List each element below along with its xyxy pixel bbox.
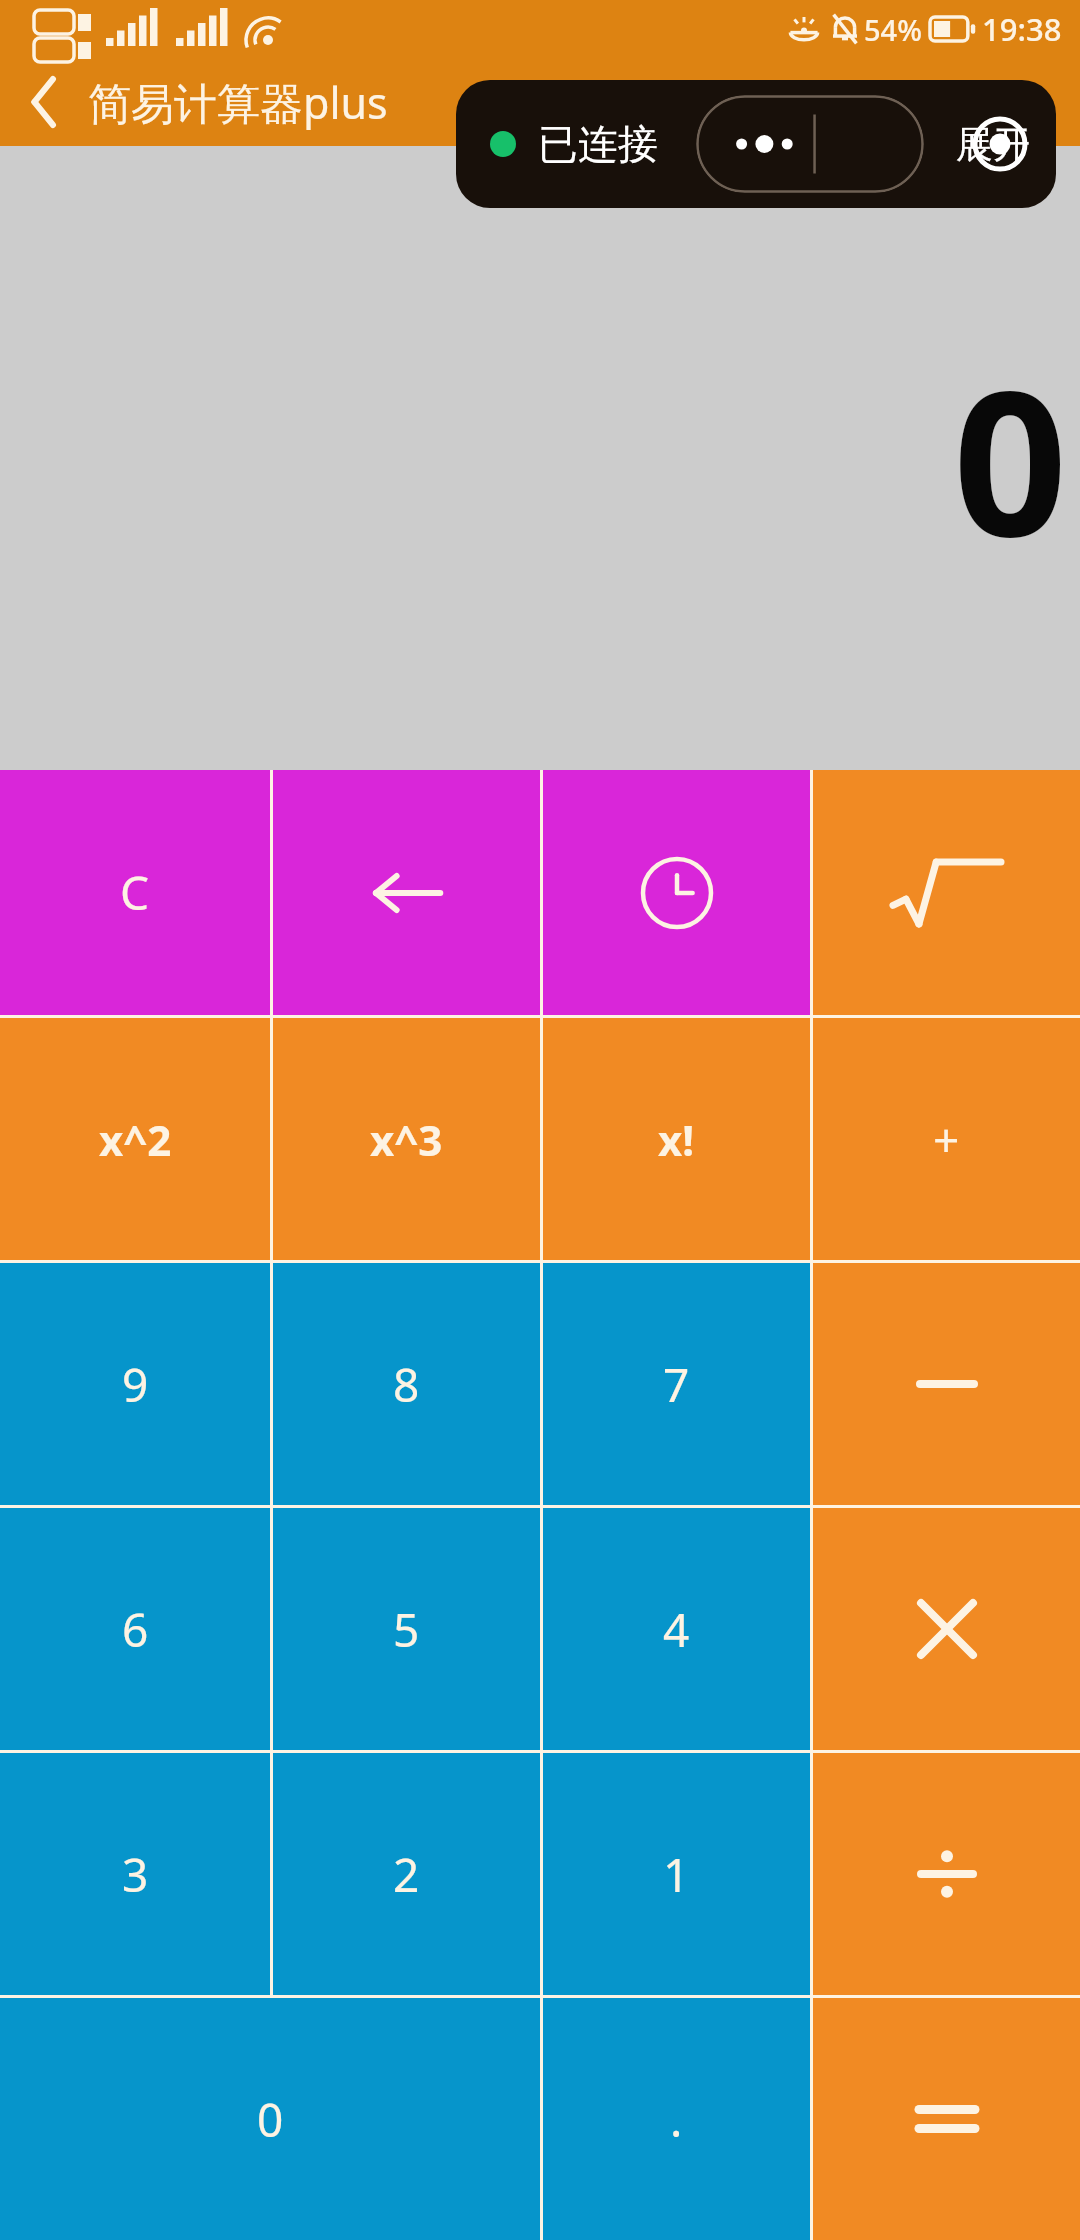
button[interactable]: + bbox=[813, 1018, 1080, 1260]
staticText: 展开 bbox=[956, 121, 1030, 168]
button[interactable]: 4 bbox=[543, 1508, 810, 1750]
staticText: 0 bbox=[953, 322, 1068, 594]
button[interactable]: eq bbox=[813, 1998, 1080, 2240]
staticText: 1 bbox=[663, 1843, 690, 1906]
button[interactable]: 8 bbox=[273, 1263, 540, 1505]
staticText: C bbox=[120, 861, 150, 924]
staticText: 9 bbox=[122, 1353, 149, 1416]
staticText: 5 bbox=[393, 1598, 420, 1661]
button[interactable]: minus bbox=[813, 1263, 1080, 1505]
button[interactable]: 0 bbox=[0, 1998, 540, 2240]
button[interactable]: Back bbox=[0, 58, 88, 146]
button[interactable]: times bbox=[813, 1508, 1080, 1750]
staticText: 54% bbox=[864, 10, 922, 49]
staticText: 7 bbox=[663, 1353, 690, 1416]
button[interactable]: back bbox=[273, 770, 540, 1015]
button[interactable]: div bbox=[813, 1753, 1080, 1995]
button[interactable]: . bbox=[543, 1998, 810, 2240]
staticText: . bbox=[670, 2088, 683, 2151]
button[interactable]: C bbox=[0, 770, 270, 1015]
button[interactable]: x^3 bbox=[273, 1018, 540, 1260]
button[interactable]: 5 bbox=[273, 1508, 540, 1750]
staticText: 2 bbox=[393, 1843, 420, 1906]
staticText: 0 bbox=[257, 2088, 284, 2151]
button[interactable]: 3 bbox=[0, 1753, 270, 1995]
staticText: 19:38 bbox=[982, 8, 1062, 50]
button[interactable] bbox=[696, 95, 924, 193]
button[interactable]: sqrt bbox=[813, 770, 1080, 1015]
staticText: 4 bbox=[663, 1598, 690, 1661]
staticText: 8 bbox=[393, 1353, 420, 1416]
button[interactable]: 已连接 bbox=[456, 80, 1056, 208]
staticText: 6 bbox=[122, 1598, 149, 1661]
button[interactable]: 7 bbox=[543, 1263, 810, 1505]
staticText: 3 bbox=[122, 1843, 149, 1906]
button[interactable]: x^2 bbox=[0, 1018, 270, 1260]
button[interactable]: 6 bbox=[0, 1508, 270, 1750]
button[interactable]: clock bbox=[543, 770, 810, 1015]
staticText: x^3 bbox=[370, 1111, 443, 1168]
staticText: x^2 bbox=[99, 1111, 172, 1168]
staticText: x! bbox=[658, 1111, 695, 1168]
button[interactable]: 9 bbox=[0, 1263, 270, 1505]
button[interactable]: 1 bbox=[543, 1753, 810, 1995]
staticText: 简易计算器plus bbox=[88, 73, 388, 132]
button[interactable]: 2 bbox=[273, 1753, 540, 1995]
staticText: 已连接 bbox=[538, 119, 658, 169]
button[interactable]: x! bbox=[543, 1018, 810, 1260]
staticText: + bbox=[933, 1108, 960, 1171]
